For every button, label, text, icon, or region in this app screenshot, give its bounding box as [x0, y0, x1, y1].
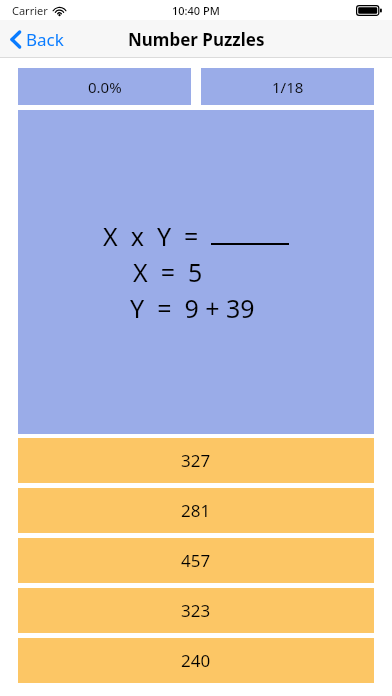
- staticText: 10:40 PM: [172, 3, 220, 18]
- staticText: 281: [181, 499, 211, 522]
- other: Back: [10, 30, 21, 49]
- staticText: 323: [181, 599, 211, 622]
- staticText: X x Y =: [103, 219, 199, 253]
- button[interactable]: 240: [18, 638, 374, 683]
- button[interactable]: 323: [18, 588, 374, 633]
- staticText: Back: [26, 28, 64, 51]
- staticText: 240: [181, 649, 211, 672]
- button[interactable]: X x Y =: [18, 110, 374, 434]
- staticText: X = 5: [133, 255, 203, 289]
- button[interactable]: 457: [18, 538, 374, 583]
- button[interactable]: 327: [18, 438, 374, 483]
- button[interactable]: 281: [18, 488, 374, 533]
- staticText: 1/18: [272, 77, 304, 97]
- button[interactable]: 0.0%: [18, 68, 191, 105]
- staticText: Y = 9 + 39: [130, 291, 255, 325]
- staticText: 457: [181, 549, 211, 572]
- staticText: 327: [181, 449, 211, 472]
- staticText: Carrier: [12, 3, 48, 18]
- staticText: 0.0%: [88, 77, 122, 97]
- staticText: Number Puzzles: [128, 28, 265, 51]
- button[interactable]: Back: [0, 23, 76, 56]
- button[interactable]: 1/18: [201, 68, 374, 105]
